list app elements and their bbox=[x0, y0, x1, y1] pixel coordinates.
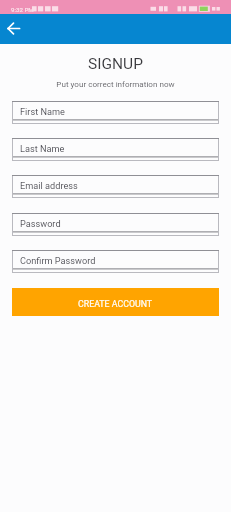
staticText: Email address bbox=[20, 180, 78, 191]
button[interactable]: Back bbox=[1, 17, 25, 41]
staticText: 9:32 PM bbox=[11, 6, 34, 13]
button[interactable]: First Name bbox=[12, 101, 219, 124]
button[interactable]: Last Name bbox=[12, 138, 219, 161]
staticText: Confirm Password bbox=[20, 255, 96, 266]
staticText: Last Name bbox=[20, 143, 65, 154]
staticText: Put your correct information now bbox=[0, 79, 231, 88]
staticText: CREATE ACCOUNT bbox=[78, 299, 153, 309]
button[interactable]: Email address bbox=[12, 175, 219, 198]
staticText: SIGNUP bbox=[0, 55, 231, 73]
button[interactable]: Password bbox=[12, 213, 219, 236]
staticText: Password bbox=[20, 218, 61, 229]
staticText: First Name bbox=[20, 106, 65, 117]
button[interactable]: Confirm Password bbox=[12, 250, 219, 273]
button[interactable]: CREATE ACCOUNT bbox=[12, 288, 219, 316]
